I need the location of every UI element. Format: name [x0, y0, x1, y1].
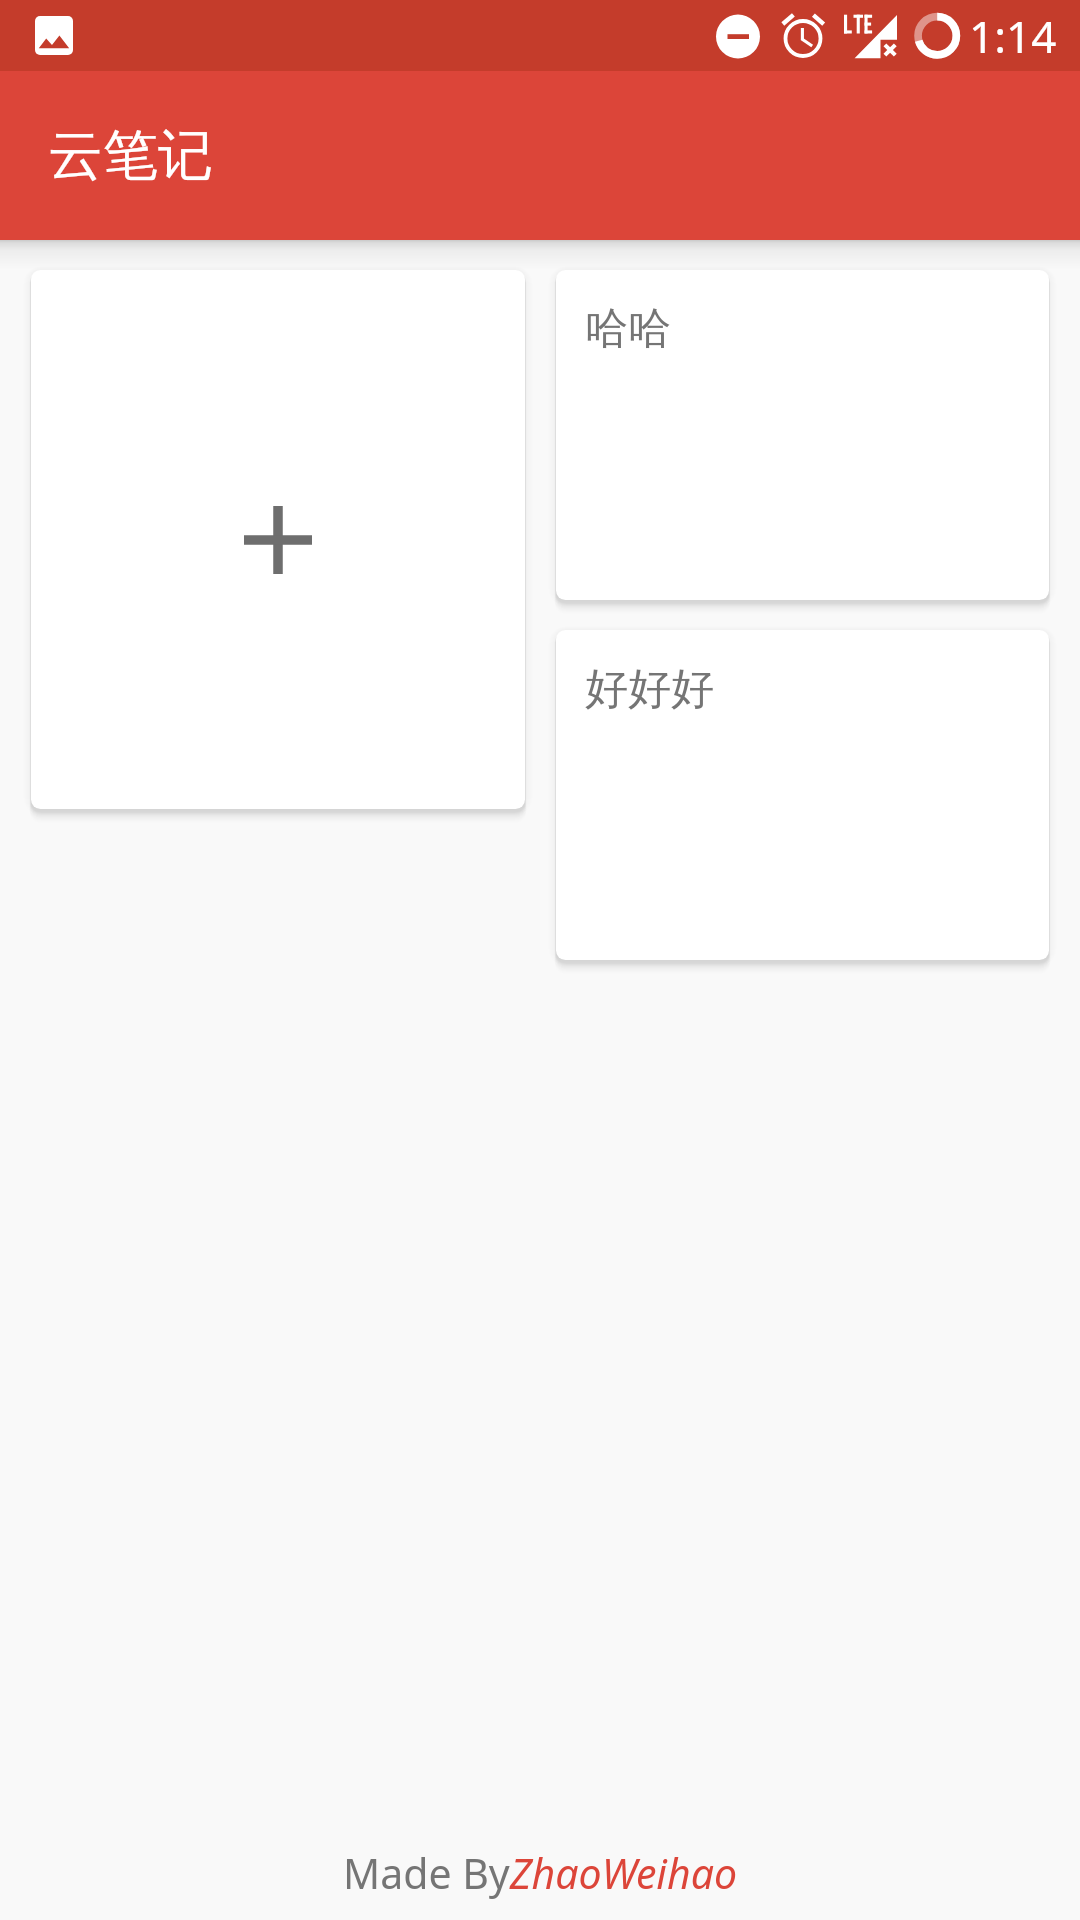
button[interactable]: 好好好	[556, 630, 1049, 960]
staticText: 哈哈	[585, 302, 671, 356]
staticText: 1:14	[969, 6, 1057, 66]
staticText: 好好好	[585, 662, 714, 716]
button[interactable]: Add note	[31, 270, 525, 809]
button[interactable]: 哈哈	[556, 270, 1049, 600]
other: Screenshot notification	[35, 16, 73, 55]
staticText: 云笔记	[48, 121, 213, 190]
staticText: Made ByZhaoWeihao	[343, 1845, 738, 1901]
